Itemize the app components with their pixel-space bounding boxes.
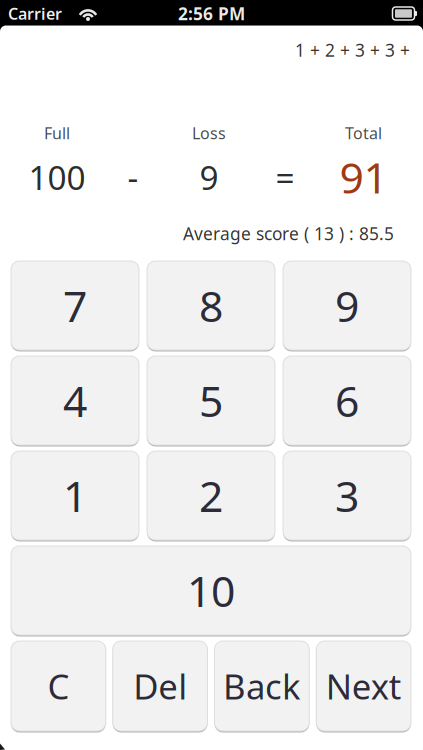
button[interactable]: 9 (283, 261, 411, 350)
staticText: 9 (199, 155, 218, 199)
staticText: 9 (335, 277, 359, 334)
button[interactable]: 3 (283, 451, 411, 540)
staticText: Average score ( 13 ) : 85.5 (183, 222, 394, 245)
staticText: 1 (63, 467, 87, 524)
button[interactable]: 8 (147, 261, 275, 350)
button[interactable]: 5 (147, 356, 275, 445)
staticText: Del (133, 663, 187, 709)
button[interactable]: 10 (11, 546, 411, 635)
staticText: 4 (63, 372, 87, 429)
staticText: 100 (28, 155, 85, 199)
button[interactable]: Next (316, 641, 411, 731)
staticText: C (47, 663, 69, 709)
staticText: - (127, 155, 138, 199)
staticText: 1 + 2 + 3 + 3 + (295, 38, 410, 61)
button[interactable]: Back (214, 641, 309, 731)
button[interactable]: 2 (147, 451, 275, 540)
staticText: = (275, 155, 294, 199)
button[interactable]: C (11, 641, 106, 731)
staticText: 2 (199, 467, 223, 524)
staticText: 7 (63, 277, 87, 334)
button[interactable]: 7 (11, 261, 139, 350)
staticText: 5 (199, 372, 223, 429)
button[interactable]: Del (113, 641, 208, 731)
staticText: Full (44, 122, 70, 144)
staticText: Back (223, 663, 301, 709)
staticText: 6 (335, 372, 359, 429)
staticText: 3 (335, 467, 359, 524)
staticText: 2:56 PM (178, 2, 245, 25)
button[interactable]: 4 (11, 356, 139, 445)
button[interactable]: 6 (283, 356, 411, 445)
button[interactable]: 1 (11, 451, 139, 540)
staticText: Next (326, 663, 402, 709)
staticText: Carrier (8, 3, 62, 24)
staticText: 10 (187, 562, 235, 619)
staticText: 8 (199, 277, 223, 334)
staticText: Total (345, 122, 382, 144)
staticText: 91 (339, 149, 387, 205)
staticText: Loss (192, 122, 226, 144)
